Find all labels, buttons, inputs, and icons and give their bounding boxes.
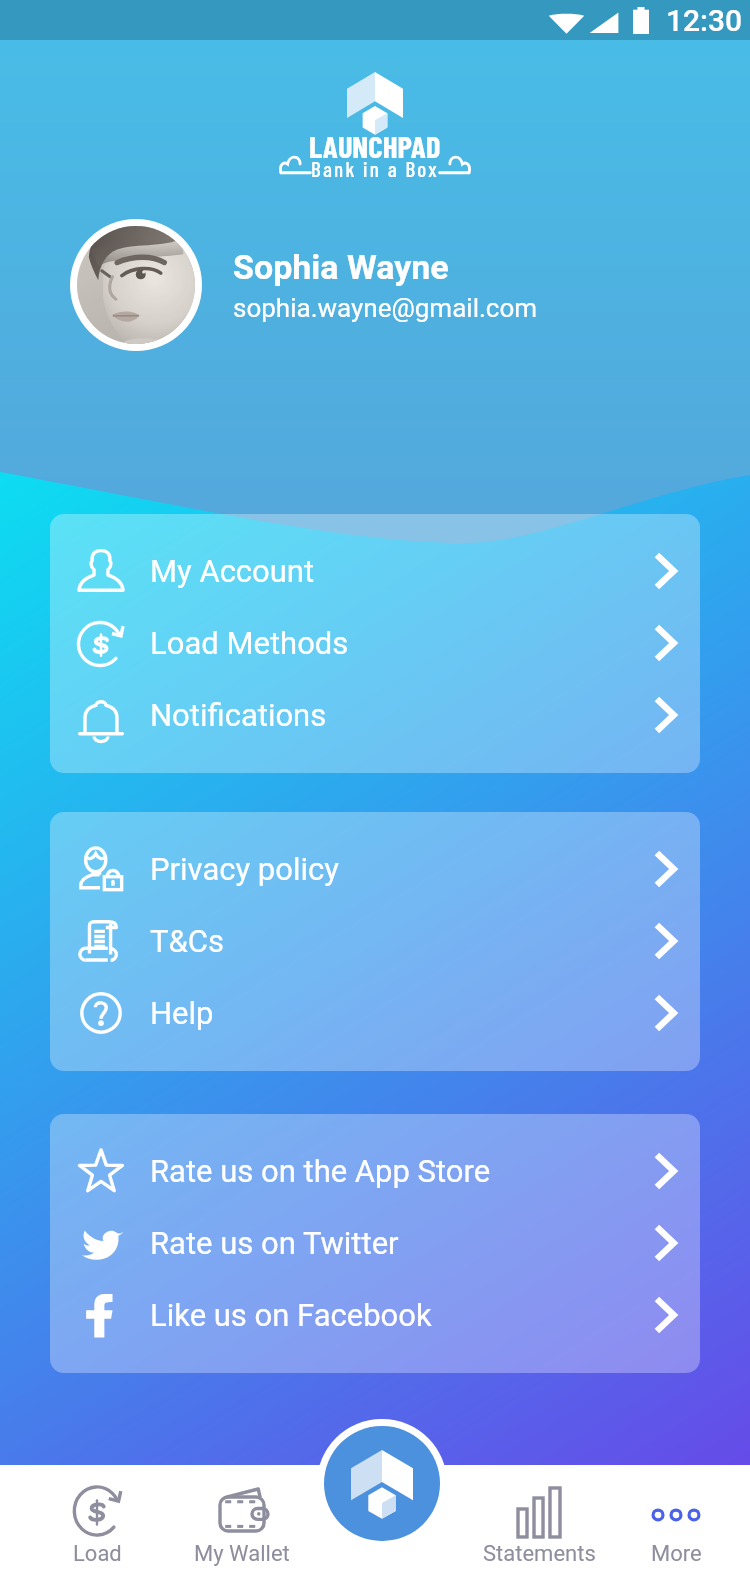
button[interactable]: Rate us on the App Store [50,1135,700,1207]
staticText: 12:30 [666,3,743,38]
staticText: sophia.wayne@gmail.com [233,293,538,323]
button[interactable]: Statements [479,1475,599,1580]
button[interactable]: Load Methods [50,607,700,679]
staticText: Like us on Facebook [150,1297,432,1333]
staticText: Privacy policy [150,851,339,887]
staticText: Notifications [150,697,327,733]
staticText: Load Methods [150,625,349,661]
staticText: Rate us on Twitter [150,1225,399,1261]
staticText: T&Cs [150,923,224,959]
button[interactable]: Notifications [50,679,700,751]
staticText: Rate us on the App Store [150,1153,491,1189]
staticText: Help [150,995,214,1031]
button[interactable]: T&Cs [50,905,700,977]
staticText: Bank in a Box [311,156,439,181]
staticText: My Wallet [194,1541,290,1567]
staticText: More [651,1541,702,1567]
button[interactable]: Launchpad home [324,1426,440,1541]
button[interactable]: My Account [50,535,700,607]
button[interactable]: Load [37,1475,157,1580]
button[interactable]: Like us on Facebook [50,1279,700,1351]
staticText: Statements [483,1541,596,1567]
button[interactable]: Rate us on Twitter [50,1207,700,1279]
staticText: Sophia Wayne [233,247,449,287]
staticText: LAUNCHPAD [309,127,441,164]
button[interactable]: Privacy policy [50,833,700,905]
button[interactable]: My Wallet [182,1475,302,1580]
button[interactable]: More [616,1475,736,1580]
staticText: Load [73,1541,122,1567]
button[interactable]: Help [50,977,700,1049]
staticText: My Account [150,553,315,589]
